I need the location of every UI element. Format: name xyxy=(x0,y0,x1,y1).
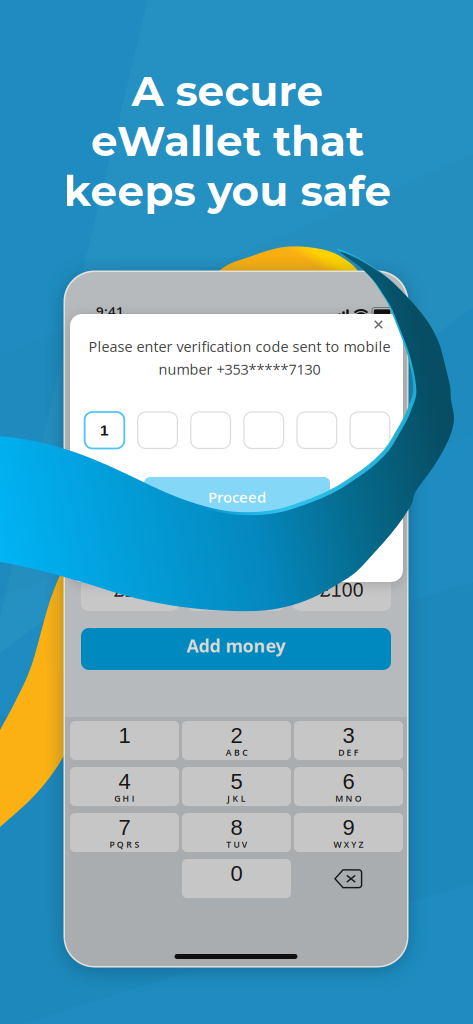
staticText: 5 xyxy=(230,769,242,794)
button[interactable]: 6 xyxy=(294,767,403,806)
staticText: A secure xyxy=(131,65,323,117)
staticText: 6 xyxy=(342,769,354,794)
button[interactable]: Proceed xyxy=(144,477,330,517)
staticText: eWallet that xyxy=(91,115,364,167)
button[interactable]: 3 xyxy=(294,721,403,760)
button[interactable]: 7 xyxy=(70,813,179,852)
button[interactable]: 9 xyxy=(294,813,403,852)
staticText: WXYZ xyxy=(334,838,363,850)
staticText: £100 xyxy=(320,579,364,601)
staticText: 9 xyxy=(342,815,354,840)
staticText: GHI xyxy=(114,792,135,804)
staticText: 3 xyxy=(342,723,354,748)
staticText: number +353*****7130 xyxy=(158,359,320,379)
staticText: Add money xyxy=(186,633,285,657)
staticText: Please enter verification code sent to m… xyxy=(88,336,390,356)
staticText: MNO xyxy=(335,792,362,804)
button[interactable]: £20 xyxy=(81,569,180,611)
staticText: 8 xyxy=(230,815,242,840)
staticText: PQRS xyxy=(110,838,139,850)
button[interactable]: £50 xyxy=(187,569,285,611)
button[interactable]: 0 xyxy=(182,859,291,898)
staticText: keeps you safe xyxy=(63,165,391,217)
staticText: DEF xyxy=(338,746,359,758)
staticText: JKL xyxy=(227,792,246,804)
staticText: 0 xyxy=(230,861,242,886)
staticText: 7 xyxy=(118,815,130,840)
staticText: TUV xyxy=(226,838,247,850)
button[interactable]: Close xyxy=(363,310,393,338)
button[interactable]: 1 xyxy=(70,721,179,760)
staticText: Proceed xyxy=(208,487,266,507)
staticText: 2 xyxy=(230,723,242,748)
button[interactable]: 5 xyxy=(182,767,291,806)
staticText: £20 xyxy=(114,579,147,601)
button[interactable]: 2 xyxy=(182,721,291,760)
staticText: 1 xyxy=(100,422,109,439)
button[interactable]: 8 xyxy=(182,813,291,852)
button[interactable]: Delete xyxy=(294,859,403,898)
staticText: 9:41 xyxy=(96,302,124,320)
button[interactable]: Add money xyxy=(81,628,391,670)
staticText: ABC xyxy=(226,746,247,758)
button[interactable]: 4 xyxy=(70,767,179,806)
button[interactable]: £100 xyxy=(292,569,391,611)
staticText: 4 xyxy=(118,769,130,794)
staticText: 1 xyxy=(118,723,130,748)
